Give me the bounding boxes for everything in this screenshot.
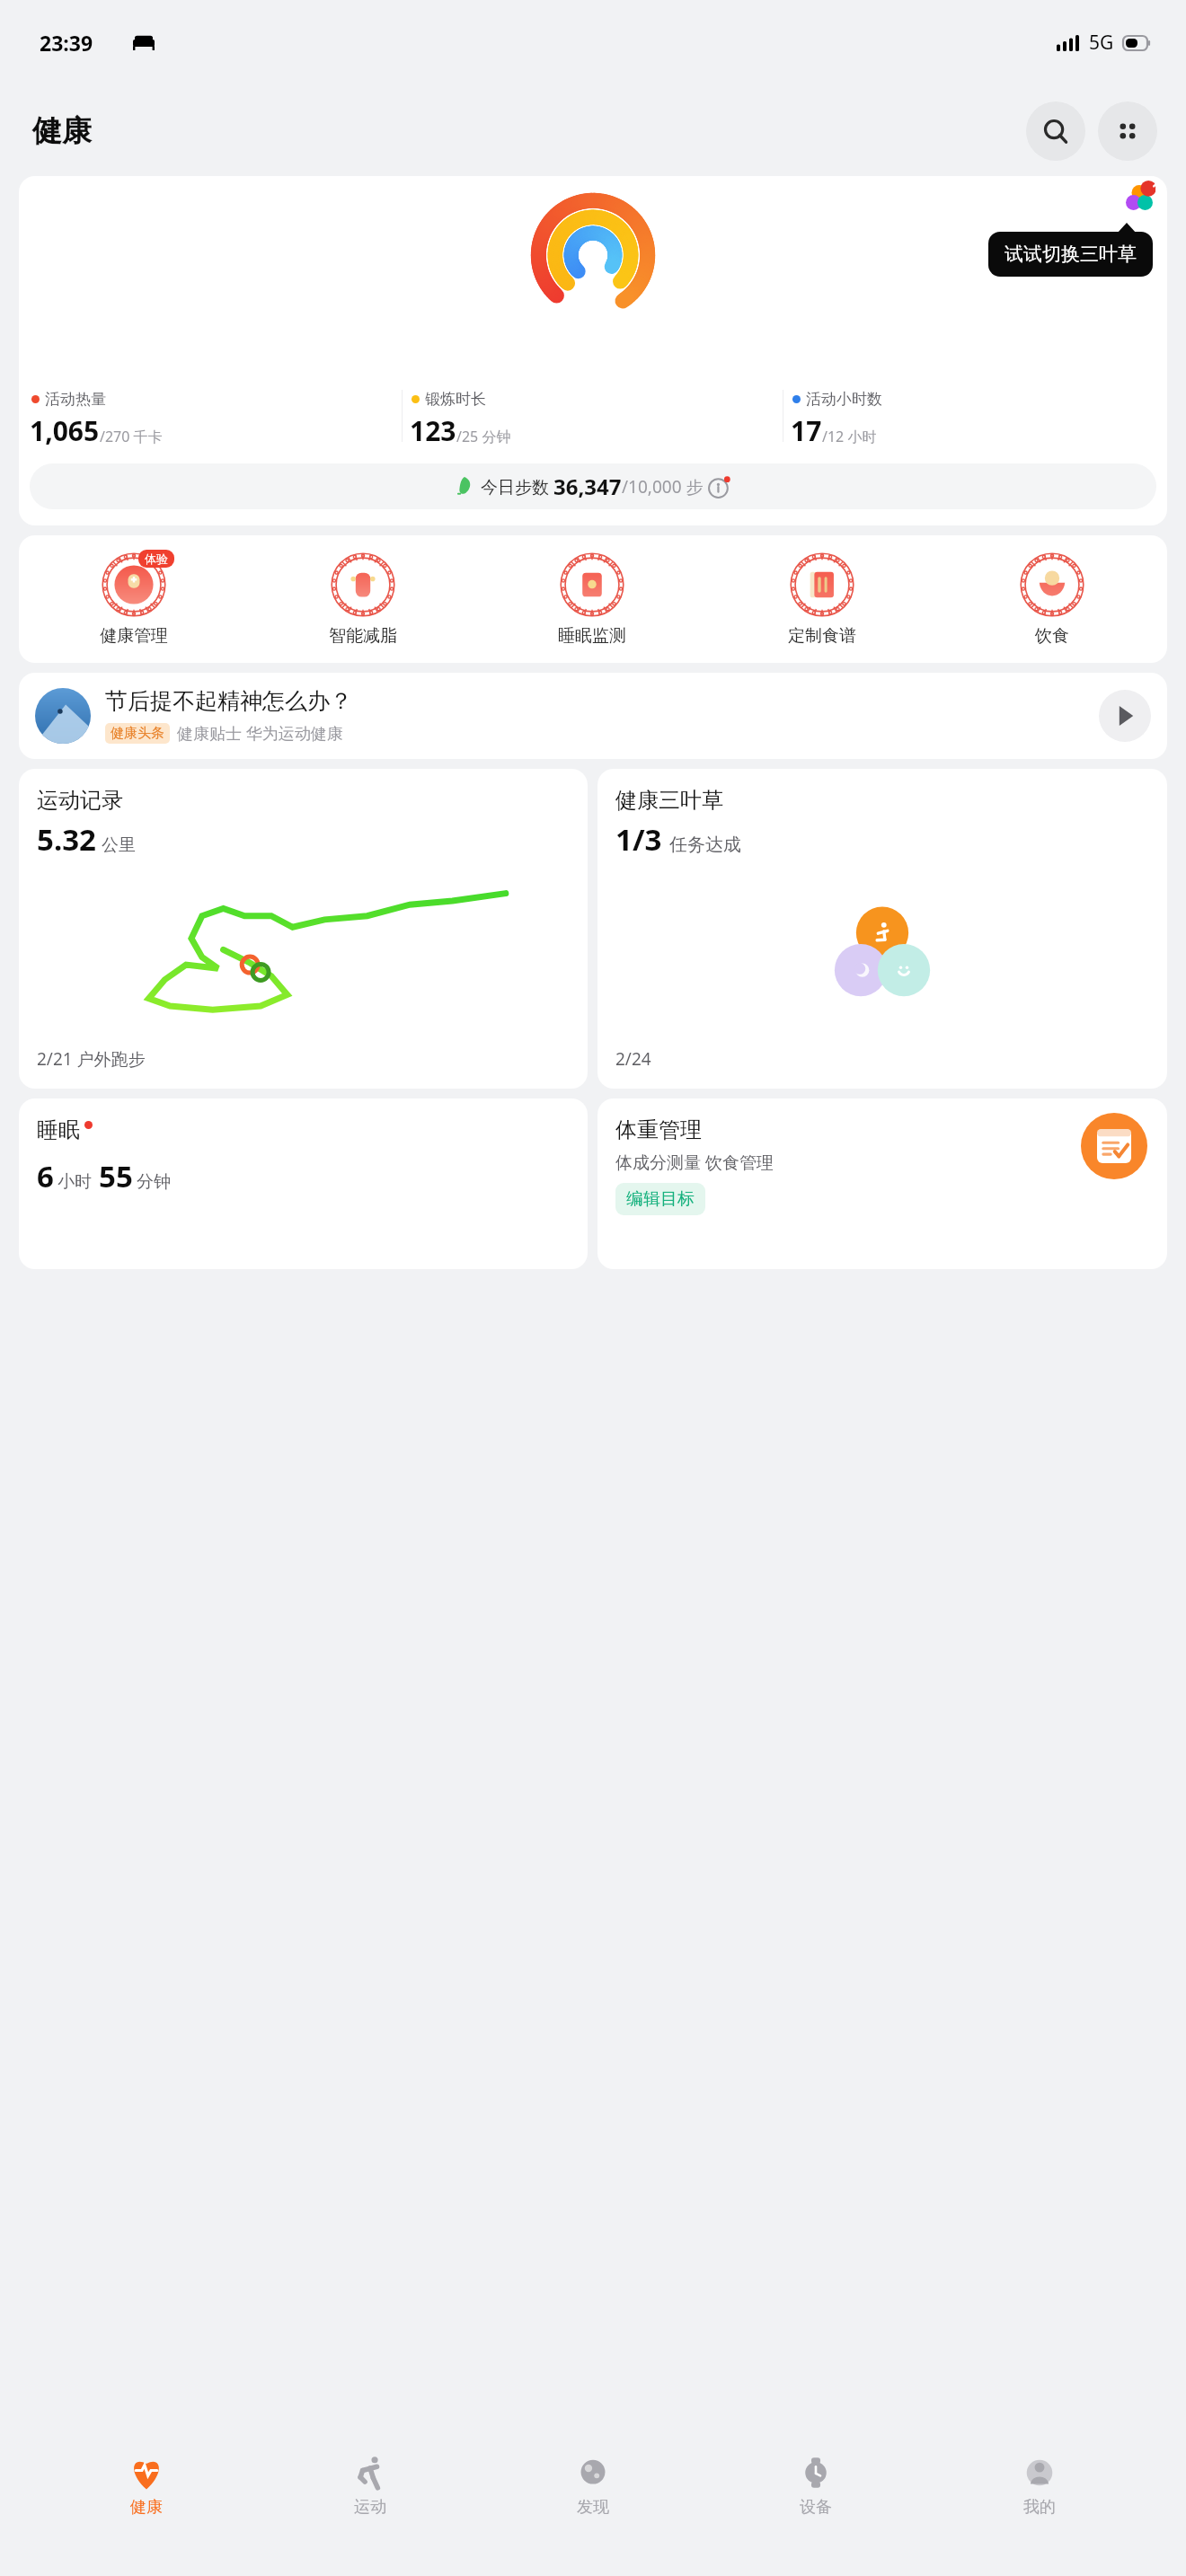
staticText: 饮食: [1035, 625, 1069, 647]
staticText: 体验: [145, 551, 168, 566]
staticText: /270 千卡: [100, 427, 163, 446]
staticText: 公里: [102, 834, 136, 856]
button[interactable]: 设备: [739, 2448, 892, 2518]
staticText: 今日步数: [481, 475, 553, 498]
staticText: 体重管理: [615, 1116, 702, 1143]
staticText: 健康贴士 华为运动健康: [177, 722, 343, 745]
staticText: 健康头条: [111, 725, 164, 742]
staticText: 健康: [32, 112, 92, 150]
button[interactable]: 健康: [70, 2448, 223, 2518]
staticText: 6: [37, 1156, 54, 1196]
staticText: 定制食谱: [788, 625, 856, 647]
button[interactable]: 发现: [517, 2448, 669, 2518]
staticText: 睡眠: [37, 1116, 80, 1143]
button[interactable]: 活动热量: [19, 176, 1167, 525]
staticText: 我的: [1023, 2497, 1056, 2518]
staticText: 活动热量: [45, 390, 106, 409]
staticText: 5.32: [37, 819, 96, 860]
button[interactable]: Search: [1026, 101, 1085, 161]
button[interactable]: 饮食: [937, 551, 1167, 647]
button[interactable]: 节后提不起精神怎么办？: [19, 673, 1167, 759]
staticText: 活动小时数: [806, 390, 882, 409]
button[interactable]: Play: [1099, 690, 1151, 742]
button[interactable]: 体验: [19, 535, 1167, 663]
staticText: 健康管理: [100, 625, 168, 647]
button[interactable]: 运动: [294, 2448, 447, 2518]
button[interactable]: 我的: [963, 2448, 1116, 2518]
staticText: 体成分测量 饮食管理: [615, 1151, 774, 1174]
staticText: 36,347: [553, 472, 622, 501]
staticText: /12 小时: [822, 427, 877, 446]
staticText: 健康三叶草: [615, 787, 723, 814]
staticText: 运动记录: [37, 787, 123, 814]
staticText: 123: [410, 412, 456, 449]
button[interactable]: 睡眠: [19, 1098, 588, 1269]
staticText: 锻炼时长: [425, 390, 486, 409]
staticText: 1: [1152, 179, 1161, 198]
staticText: 1,065: [30, 412, 100, 449]
staticText: 55: [99, 1156, 133, 1196]
staticText: 任务达成: [669, 834, 741, 856]
staticText: 智能减脂: [329, 625, 397, 647]
staticText: 小时: [58, 1171, 92, 1193]
staticText: 分钟: [137, 1171, 171, 1193]
button[interactable]: 体验: [19, 551, 248, 647]
button[interactable]: 今日步数: [30, 463, 1156, 509]
staticText: 发现: [577, 2497, 609, 2518]
staticText: 23:39: [40, 29, 93, 57]
button[interactable]: 体重管理: [597, 1098, 1167, 1269]
staticText: 5G: [1089, 30, 1114, 56]
button[interactable]: 运动记录: [19, 769, 588, 1089]
button[interactable]: Switch clover: [1113, 176, 1165, 219]
staticText: 编辑目标: [626, 1188, 695, 1210]
staticText: 2/24: [615, 1047, 651, 1071]
button[interactable]: 智能减脂: [248, 551, 477, 647]
staticText: 2/21 户外跑步: [37, 1047, 146, 1071]
staticText: 运动: [354, 2497, 386, 2518]
button[interactable]: More options: [1098, 101, 1157, 161]
button[interactable]: 编辑目标: [615, 1183, 705, 1215]
button[interactable]: 试试切换三叶草: [988, 232, 1153, 277]
button[interactable]: Diet record: [1081, 1113, 1147, 1179]
staticText: 睡眠监测: [558, 625, 626, 647]
staticText: 健康: [130, 2497, 163, 2518]
staticText: /10,000 步: [622, 475, 708, 498]
button[interactable]: 定制食谱: [707, 551, 937, 647]
staticText: 设备: [800, 2497, 832, 2518]
staticText: 试试切换三叶草: [1005, 243, 1137, 266]
staticText: 17: [791, 412, 822, 449]
staticText: 1/3: [615, 819, 662, 860]
staticText: 节后提不起精神怎么办？: [105, 687, 352, 715]
staticText: /25 分钟: [456, 427, 511, 446]
button[interactable]: 健康三叶草: [597, 769, 1167, 1089]
button[interactable]: 睡眠监测: [477, 551, 707, 647]
